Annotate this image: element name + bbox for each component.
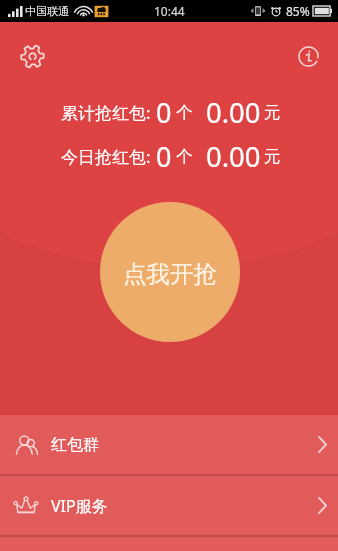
staticText: 0: [156, 94, 172, 131]
staticText: 0.00: [206, 138, 261, 175]
button[interactable]: Settings: [17, 41, 47, 71]
staticText: 个: [176, 146, 193, 167]
button[interactable]: VIP服务: [0, 476, 338, 535]
staticText: 红包群: [51, 435, 99, 455]
staticText: 累计抢红包:: [61, 101, 151, 124]
staticText: 今日抢红包:: [61, 145, 151, 168]
button[interactable]: Info: [293, 41, 323, 71]
staticText: 中国联通: [25, 4, 69, 18]
button[interactable]: 红包群: [0, 415, 338, 474]
button[interactable]: 点我开抢: [100, 202, 240, 342]
staticText: 元: [264, 146, 281, 167]
staticText: 0: [156, 138, 172, 175]
staticText: 0.00: [206, 94, 261, 131]
staticText: 10:44: [154, 3, 185, 19]
staticText: 个: [176, 102, 193, 123]
staticText: VIP服务: [51, 495, 108, 517]
staticText: 点我开抢: [123, 259, 217, 289]
staticText: 元: [264, 102, 281, 123]
staticText: 85%: [286, 3, 310, 19]
